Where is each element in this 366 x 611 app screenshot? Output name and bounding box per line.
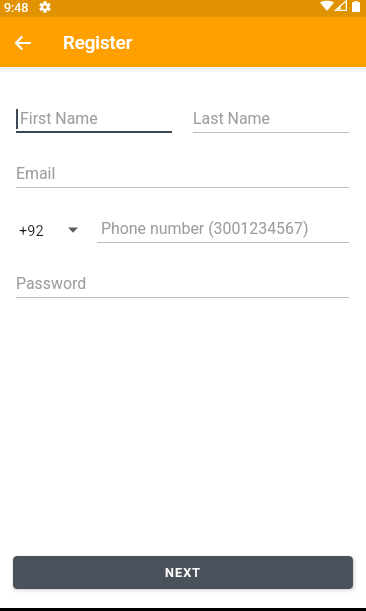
staticText: Password [16,274,87,293]
button[interactable]: First Name [16,107,172,133]
staticText: Last Name [193,109,270,128]
staticText: Phone number (3001234567) [101,219,309,238]
staticText: Email [16,164,56,183]
button[interactable]: Country code +92 [16,217,97,243]
button[interactable]: Phone number (3001234567) [97,217,349,243]
staticText: 9:48 [4,0,29,13]
button[interactable]: NEXT [13,556,353,589]
staticText: Register [63,32,133,54]
button[interactable]: Back [6,26,40,60]
staticText: +92 [19,222,44,239]
button[interactable]: Last Name [193,107,349,133]
button[interactable]: Password [16,272,349,298]
button[interactable]: Email [16,162,349,188]
staticText: First Name [20,109,98,128]
staticText: NEXT [165,565,202,580]
